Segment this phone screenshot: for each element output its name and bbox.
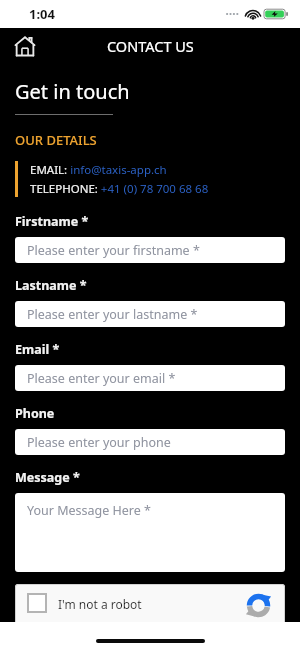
button[interactable]: TELEPHONE: +41 (0) 78 700 68 68 — [30, 181, 209, 197]
staticText: Please enter your lastname * — [27, 306, 198, 323]
staticText: Phone — [15, 405, 55, 422]
staticText: Message * — [15, 469, 80, 486]
button[interactable]: Please enter your lastname * — [15, 301, 285, 327]
button[interactable]: Home — [8, 29, 42, 63]
staticText: I'm not a robot — [58, 596, 142, 612]
button[interactable]: EMAIL: info@taxis-app.ch — [30, 162, 167, 178]
button[interactable]: Please enter your firstname * — [15, 237, 285, 263]
staticText: 1:04 — [29, 5, 55, 23]
staticText: Lastname * — [15, 277, 87, 294]
staticText: Get in touch — [15, 78, 130, 105]
staticText: Email * — [15, 341, 60, 358]
staticText: Your Message Here * — [27, 502, 151, 519]
button[interactable]: I'm not a robot checkbox — [15, 584, 285, 634]
staticText: Please enter your firstname * — [27, 242, 200, 259]
staticText: OUR DETAILS — [15, 131, 97, 149]
staticText: Please enter your phone — [27, 434, 171, 451]
staticText: Firstname * — [15, 213, 89, 230]
button[interactable]: Please enter your phone — [15, 429, 285, 455]
other: I'm not a robot checkbox — [27, 593, 47, 613]
staticText: CONTACT US — [107, 36, 194, 56]
button[interactable]: Your Message Here * — [15, 493, 285, 572]
button[interactable]: Please enter your email * — [15, 365, 285, 391]
staticText: Please enter your email * — [27, 370, 176, 387]
